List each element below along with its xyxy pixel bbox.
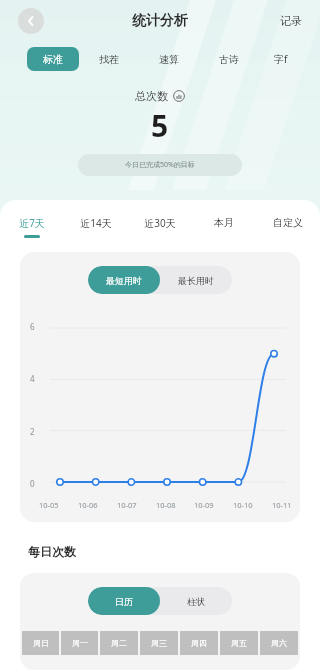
- staticText: 今日已完成50%的目标: [125, 160, 195, 170]
- staticText: 周一: [72, 638, 88, 648]
- button[interactable]: 柱状: [160, 587, 232, 615]
- button[interactable]: 找茬: [79, 47, 139, 71]
- button[interactable]: 今日已完成50%的目标: [78, 154, 242, 176]
- staticText: 10-08: [156, 500, 176, 510]
- button[interactable]: 近7天: [0, 216, 64, 238]
- button[interactable]: 字f: [259, 47, 303, 71]
- staticText: 周三: [151, 638, 167, 648]
- staticText: 每日次数: [28, 544, 76, 559]
- button[interactable]: 日历: [88, 587, 160, 615]
- button[interactable]: 古诗: [199, 47, 259, 71]
- staticText: 近7天: [19, 216, 45, 230]
- staticText: 周日: [33, 638, 49, 648]
- staticText: 周四: [191, 638, 207, 648]
- button[interactable]: Back: [18, 8, 44, 34]
- staticText: 字f: [274, 52, 288, 66]
- staticText: 近14天: [80, 216, 112, 230]
- button[interactable]: 标准: [27, 47, 79, 71]
- staticText: 2: [30, 426, 35, 437]
- staticText: 标准: [43, 53, 63, 66]
- button[interactable]: 近14天: [64, 216, 128, 235]
- staticText: 速算: [159, 53, 179, 66]
- staticText: 总次数: [135, 89, 168, 103]
- staticText: 10-10: [233, 500, 253, 510]
- button[interactable]: 最长用时: [160, 266, 232, 294]
- staticText: 找茬: [99, 53, 119, 66]
- staticText: 统计分析: [132, 12, 188, 30]
- button[interactable]: 最短用时: [88, 266, 160, 294]
- staticText: 最长用时: [178, 275, 214, 286]
- button[interactable]: 本月: [192, 216, 256, 234]
- staticText: 日历: [115, 596, 133, 607]
- staticText: 10-05: [39, 500, 59, 510]
- staticText: 0: [30, 478, 35, 489]
- staticText: 10-11: [272, 500, 292, 510]
- button[interactable]: 近30天: [128, 216, 192, 235]
- button[interactable]: Chart info: [173, 90, 185, 102]
- staticText: 5: [151, 105, 169, 146]
- staticText: 周二: [111, 638, 127, 648]
- staticText: 柱状: [187, 596, 205, 607]
- staticText: 10-06: [78, 500, 98, 510]
- staticText: 10-09: [194, 500, 214, 510]
- staticText: 自定义: [273, 216, 303, 229]
- staticText: 古诗: [219, 53, 239, 66]
- button[interactable]: 自定义: [256, 216, 320, 234]
- staticText: 本月: [214, 216, 234, 229]
- button[interactable]: 记录: [276, 10, 306, 32]
- staticText: 近30天: [144, 216, 176, 230]
- staticText: 记录: [280, 14, 302, 28]
- staticText: 周五: [231, 638, 247, 648]
- button[interactable]: 速算: [139, 47, 199, 71]
- staticText: 4: [30, 373, 35, 384]
- staticText: 最短用时: [106, 275, 142, 286]
- staticText: 周六: [271, 638, 287, 648]
- staticText: 10-07: [117, 500, 137, 510]
- staticText: 6: [30, 321, 35, 332]
